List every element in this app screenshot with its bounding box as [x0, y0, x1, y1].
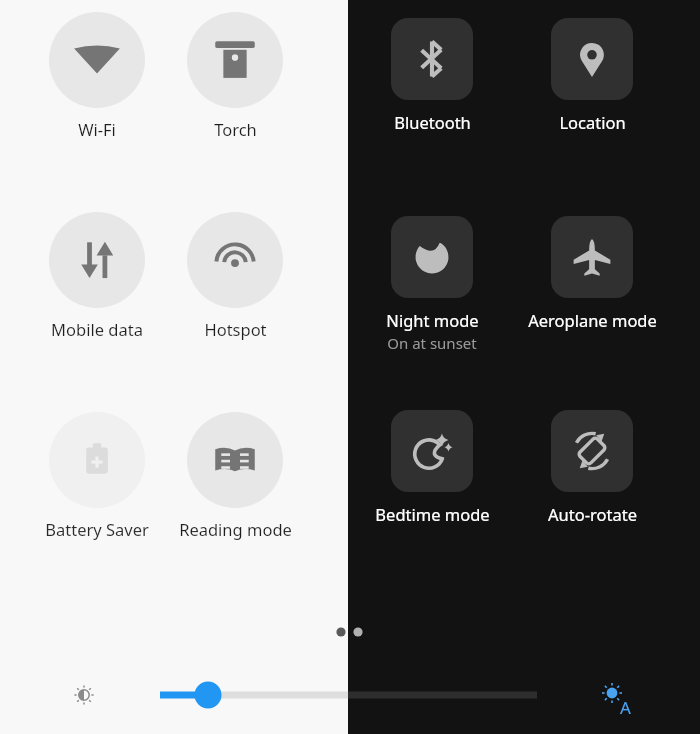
staticText: Bedtime mode — [375, 503, 490, 525]
staticText: Battery Saver — [45, 518, 149, 540]
staticText: Auto-rotate — [548, 503, 637, 525]
button[interactable]: Wi-Fi — [30, 12, 164, 140]
staticText: Mobile data — [51, 318, 143, 340]
button[interactable]: Bedtime mode — [352, 410, 512, 525]
button[interactable]: Auto-rotate — [512, 410, 672, 525]
button[interactable]: Bluetooth — [352, 18, 512, 133]
button[interactable]: Brightness slider — [150, 672, 550, 718]
button[interactable]: Mobile data — [30, 212, 164, 340]
button[interactable]: Auto brightness — [620, 696, 631, 719]
staticText: Torch — [214, 118, 257, 140]
button[interactable]: Battery Saver — [30, 412, 164, 540]
button[interactable]: Location — [512, 18, 672, 133]
staticText: On at sunset — [387, 333, 477, 353]
staticText: Reading mode — [179, 518, 292, 540]
button[interactable]: Torch — [168, 12, 302, 140]
staticText: Hotspot — [204, 318, 267, 340]
button[interactable]: Reading mode — [168, 412, 302, 540]
staticText: Wi-Fi — [78, 118, 116, 140]
button[interactable]: Night mode — [352, 216, 512, 353]
staticText: Bluetooth — [394, 111, 471, 133]
staticText: A — [620, 696, 631, 719]
button[interactable]: Aeroplane mode — [512, 216, 672, 331]
button[interactable]: Hotspot — [168, 212, 302, 340]
staticText: Night mode — [386, 309, 479, 331]
staticText: Aeroplane mode — [528, 309, 657, 331]
staticText: Location — [559, 111, 626, 133]
